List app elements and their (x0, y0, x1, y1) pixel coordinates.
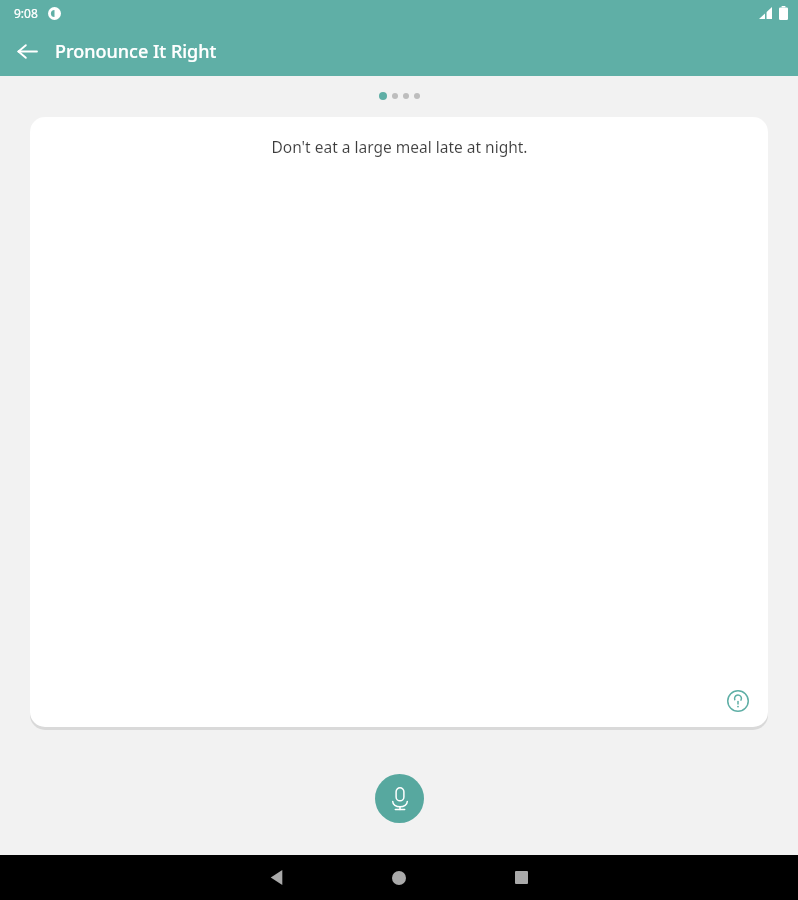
button[interactable]: Home (374, 855, 424, 900)
staticText: Pronounce It Right (55, 39, 217, 64)
button[interactable]: Recent apps (496, 855, 546, 900)
staticText: Don't eat a large meal late at night. (271, 136, 528, 157)
staticText: 9:08 (14, 5, 38, 21)
button[interactable]: Don't eat a large meal late at night. (30, 117, 768, 727)
button[interactable]: Back (252, 855, 302, 900)
button[interactable]: Help (725, 688, 751, 714)
button[interactable]: Record pronunciation (375, 774, 424, 823)
button[interactable]: Back (8, 32, 46, 70)
